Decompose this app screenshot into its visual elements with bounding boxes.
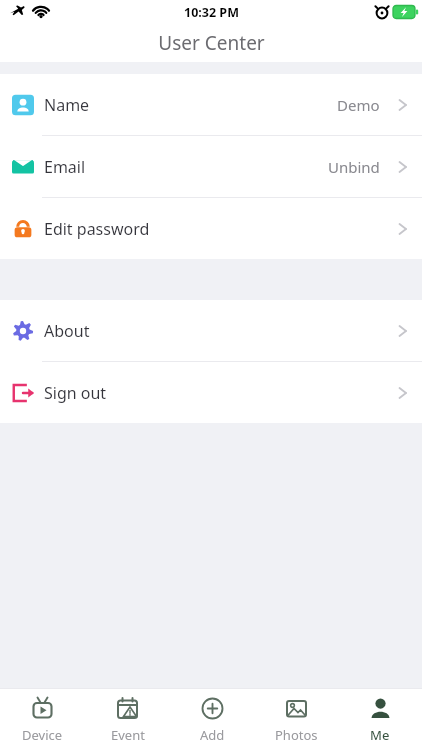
button[interactable]: Add (170, 689, 254, 750)
staticText: Add (200, 726, 225, 744)
staticText: Email (44, 156, 86, 178)
staticText: Photos (275, 726, 318, 744)
button[interactable]: Edit password (0, 198, 422, 259)
button[interactable]: Device (0, 689, 85, 750)
button[interactable]: Event (85, 689, 170, 750)
button[interactable]: Sign out (0, 362, 422, 423)
staticText: Name (44, 94, 90, 116)
button[interactable]: Photos (254, 689, 338, 750)
staticText: User Center (158, 30, 265, 56)
staticText: Event (111, 726, 145, 744)
staticText: Demo (337, 95, 380, 115)
staticText: Unbind (328, 157, 380, 177)
staticText: Me (370, 726, 390, 744)
staticText: 10:32 PM (184, 4, 239, 21)
button[interactable]: Name (0, 74, 422, 135)
staticText: Sign out (44, 382, 107, 404)
staticText: Device (22, 726, 63, 744)
button[interactable]: Email (0, 136, 422, 197)
button[interactable]: About (0, 300, 422, 361)
button[interactable]: Me (338, 689, 422, 750)
staticText: Edit password (44, 218, 150, 240)
staticText: About (44, 320, 90, 342)
